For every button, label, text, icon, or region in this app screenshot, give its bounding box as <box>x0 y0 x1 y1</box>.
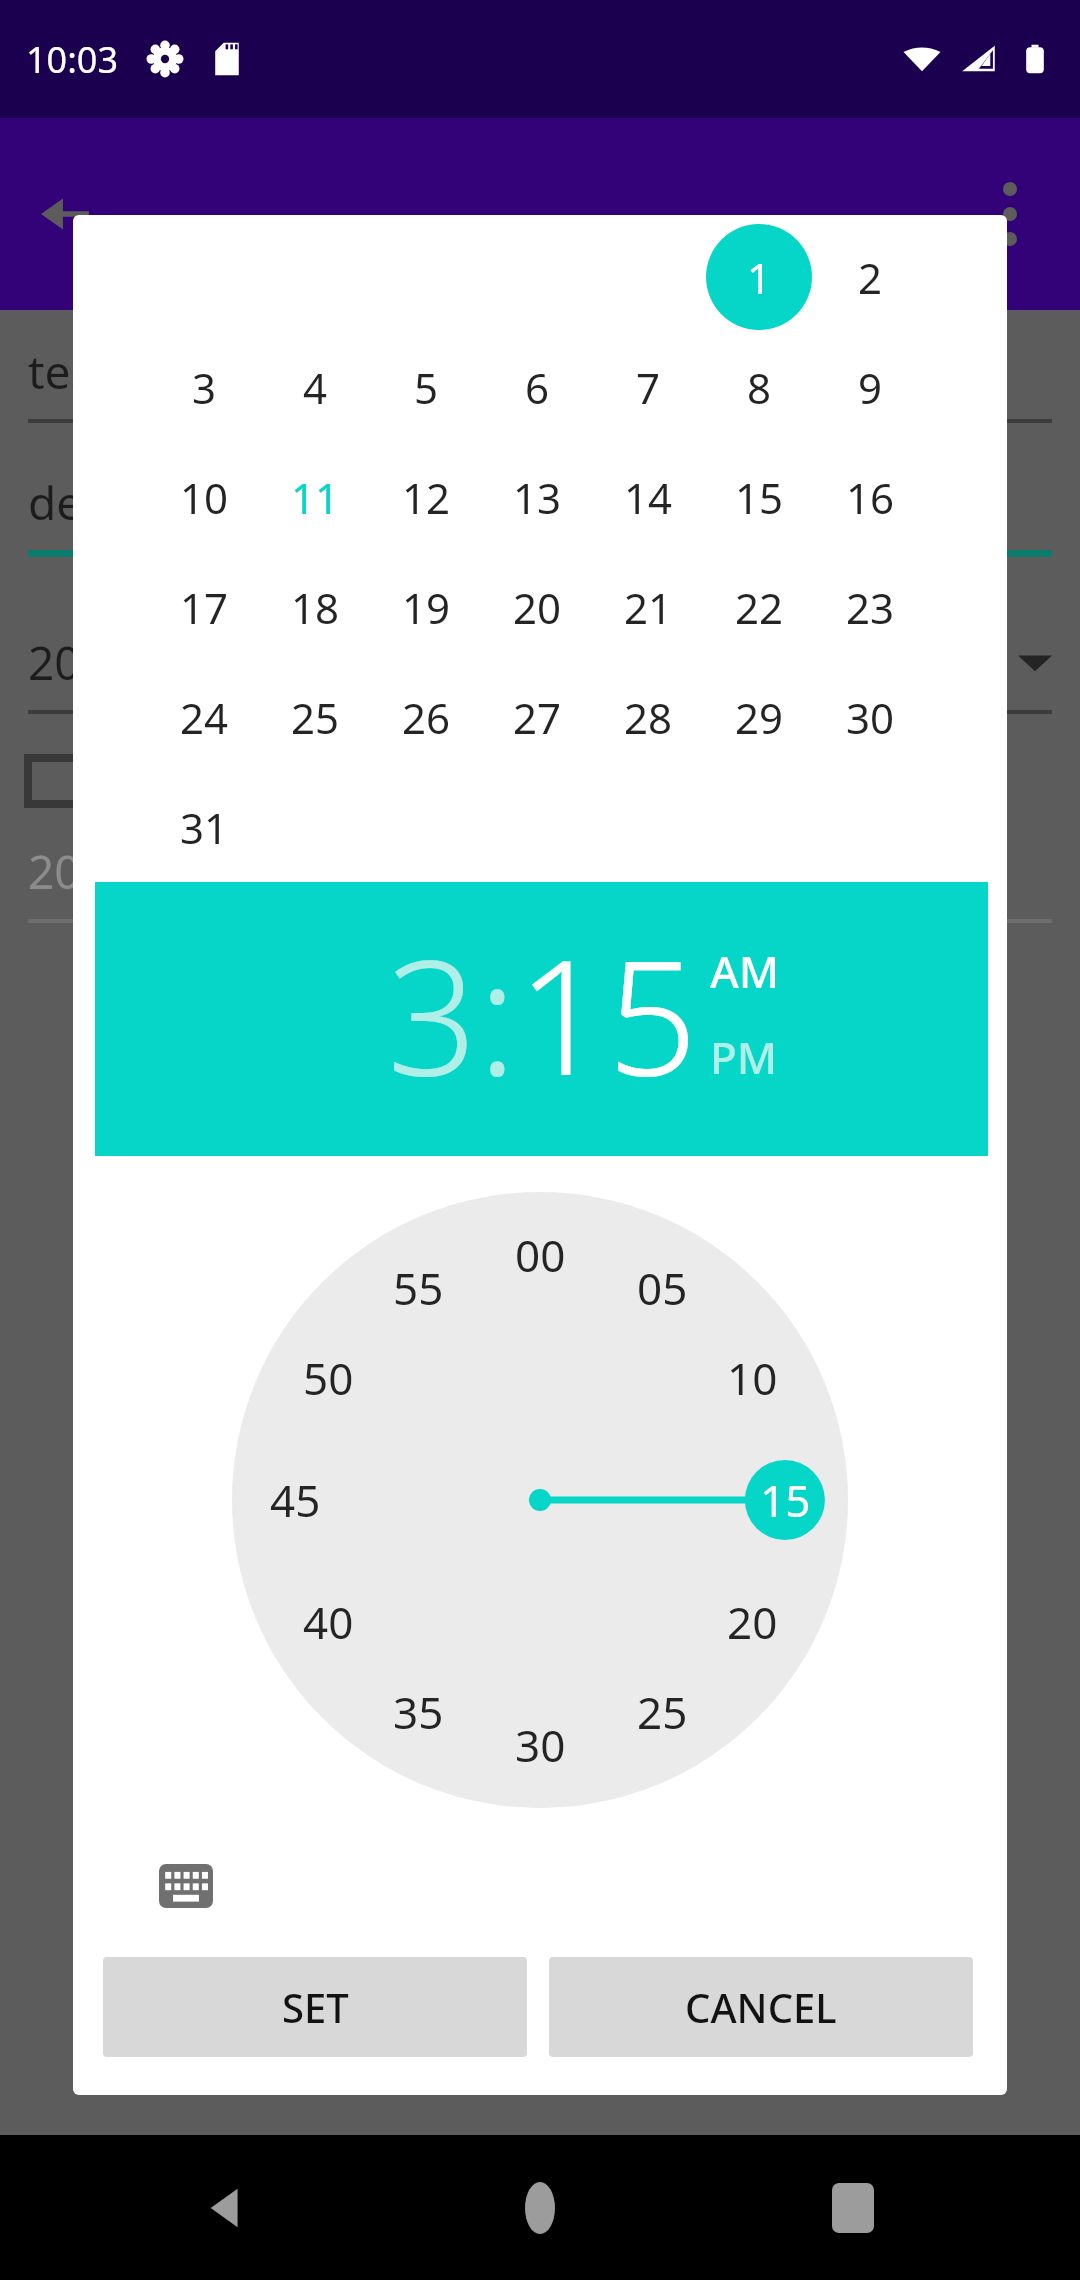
button[interactable]: 4 <box>262 334 368 440</box>
staticText: 9 <box>858 359 883 416</box>
button[interactable]: Switch to text input mode <box>150 1850 222 1922</box>
staticText: 17 <box>180 579 229 636</box>
button[interactable]: PM <box>710 1027 778 1087</box>
button[interactable]: 25 <box>262 664 368 770</box>
button[interactable]: 21 <box>595 554 701 660</box>
staticText: : <box>478 906 517 1121</box>
button[interactable]: 20 <box>484 554 590 660</box>
staticText: 7 <box>636 359 661 416</box>
staticText: 8 <box>747 359 772 416</box>
button[interactable]: 1 <box>706 224 812 330</box>
button[interactable]: 26 <box>373 664 479 770</box>
button[interactable]: 28 <box>595 664 701 770</box>
button[interactable]: More options <box>970 174 1050 254</box>
button[interactable]: 8 <box>706 334 812 440</box>
button[interactable]: CANCEL <box>549 1957 973 2057</box>
button[interactable]: 23 <box>817 554 923 660</box>
button[interactable]: 17 <box>151 554 257 660</box>
button[interactable]: 27 <box>484 664 590 770</box>
button[interactable]: 45 <box>249 1466 341 1534</box>
staticText: 30 <box>515 1715 566 1775</box>
staticText: 2024-01-11 <box>28 631 269 694</box>
staticText: 4 <box>303 359 328 416</box>
button[interactable]: 05 <box>616 1254 708 1322</box>
staticText: 40 <box>303 1592 354 1652</box>
button[interactable]: 29 <box>706 664 812 770</box>
button[interactable]: 3 <box>151 334 257 440</box>
staticText: 26 <box>402 689 451 746</box>
staticText: 21 <box>624 579 673 636</box>
button[interactable]: 10 <box>706 1344 798 1412</box>
staticText: 5 <box>414 359 439 416</box>
staticText: 24 <box>180 689 229 746</box>
button[interactable]: 15 <box>739 1466 831 1534</box>
button[interactable]: 12 <box>373 444 479 550</box>
button[interactable]: 9 <box>817 334 923 440</box>
staticText: 2024-01-11 <box>28 840 269 903</box>
staticText: 20 <box>513 579 562 636</box>
staticText: 28 <box>624 689 673 746</box>
button[interactable]: 18 <box>262 554 368 660</box>
button[interactable]: 6 <box>484 334 590 440</box>
staticText: 00 <box>515 1225 566 1285</box>
button[interactable]: 20 <box>706 1588 798 1656</box>
staticText: 55 <box>393 1258 444 1318</box>
button[interactable]: 3 <box>387 906 478 1121</box>
staticText: test <box>28 340 110 403</box>
staticText: 11 <box>291 469 340 526</box>
staticText: 25 <box>291 689 340 746</box>
button[interactable]: AM <box>710 941 780 1001</box>
button[interactable]: Navigate up <box>30 179 100 249</box>
staticText: 22 <box>735 579 784 636</box>
button[interactable]: 5 <box>373 334 479 440</box>
staticText: 18 <box>291 579 340 636</box>
staticText: 10 <box>727 1348 778 1408</box>
staticText: PM <box>710 1027 778 1087</box>
staticText: 15 <box>735 469 784 526</box>
staticText: 30 <box>846 689 895 746</box>
button[interactable]: 15 <box>517 906 698 1121</box>
staticText: 2 <box>858 249 883 306</box>
button[interactable]: 15 <box>706 444 812 550</box>
staticText: 35 <box>393 1682 444 1742</box>
button[interactable]: 30 <box>817 664 923 770</box>
staticText: 29 <box>735 689 784 746</box>
button[interactable]: Recent apps <box>808 2163 898 2253</box>
staticText: 14 <box>624 469 673 526</box>
staticText: 25 <box>637 1682 688 1742</box>
staticText: 16 <box>846 469 895 526</box>
button[interactable]: 25 <box>616 1678 708 1746</box>
staticText: SET <box>282 1980 349 2034</box>
button[interactable]: 35 <box>372 1678 464 1746</box>
staticText: 05 <box>637 1258 688 1318</box>
button[interactable]: 22 <box>706 554 812 660</box>
button[interactable]: 50 <box>282 1344 374 1412</box>
staticText: 6 <box>525 359 550 416</box>
button[interactable]: SET <box>103 1957 527 2057</box>
button[interactable]: 7 <box>595 334 701 440</box>
button[interactable]: 24 <box>151 664 257 770</box>
button[interactable]: 55 <box>372 1254 464 1322</box>
button[interactable]: 2 <box>817 224 923 330</box>
button[interactable]: 10 <box>151 444 257 550</box>
button[interactable]: 19 <box>373 554 479 660</box>
staticText: CANCEL <box>685 1980 837 2034</box>
button[interactable]: Back <box>182 2163 272 2253</box>
staticText: 50 <box>303 1348 354 1408</box>
staticText: description <box>28 471 271 534</box>
button[interactable]: 11 <box>262 444 368 550</box>
button[interactable]: 14 <box>595 444 701 550</box>
staticText: 19 <box>402 579 451 636</box>
button[interactable]: 13 <box>484 444 590 550</box>
staticText: 20 <box>727 1592 778 1652</box>
button[interactable]: 00 <box>494 1221 586 1289</box>
button[interactable]: Home <box>495 2163 585 2253</box>
staticText: 23 <box>846 579 895 636</box>
staticText: 27 <box>513 689 562 746</box>
button[interactable]: 16 <box>817 444 923 550</box>
staticText: 1 <box>747 249 772 306</box>
button[interactable]: 31 <box>151 774 257 880</box>
button[interactable]: 30 <box>494 1711 586 1779</box>
button[interactable]: 40 <box>282 1588 374 1656</box>
staticText: 45 <box>270 1470 321 1530</box>
